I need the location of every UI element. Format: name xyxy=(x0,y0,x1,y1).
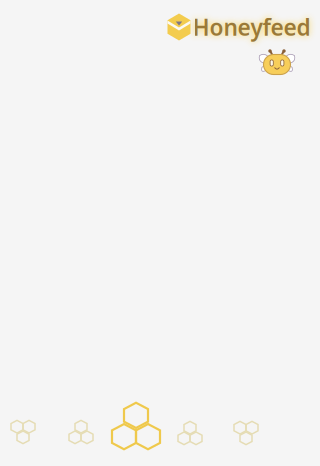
staticText: Honeyfeed xyxy=(192,12,310,42)
